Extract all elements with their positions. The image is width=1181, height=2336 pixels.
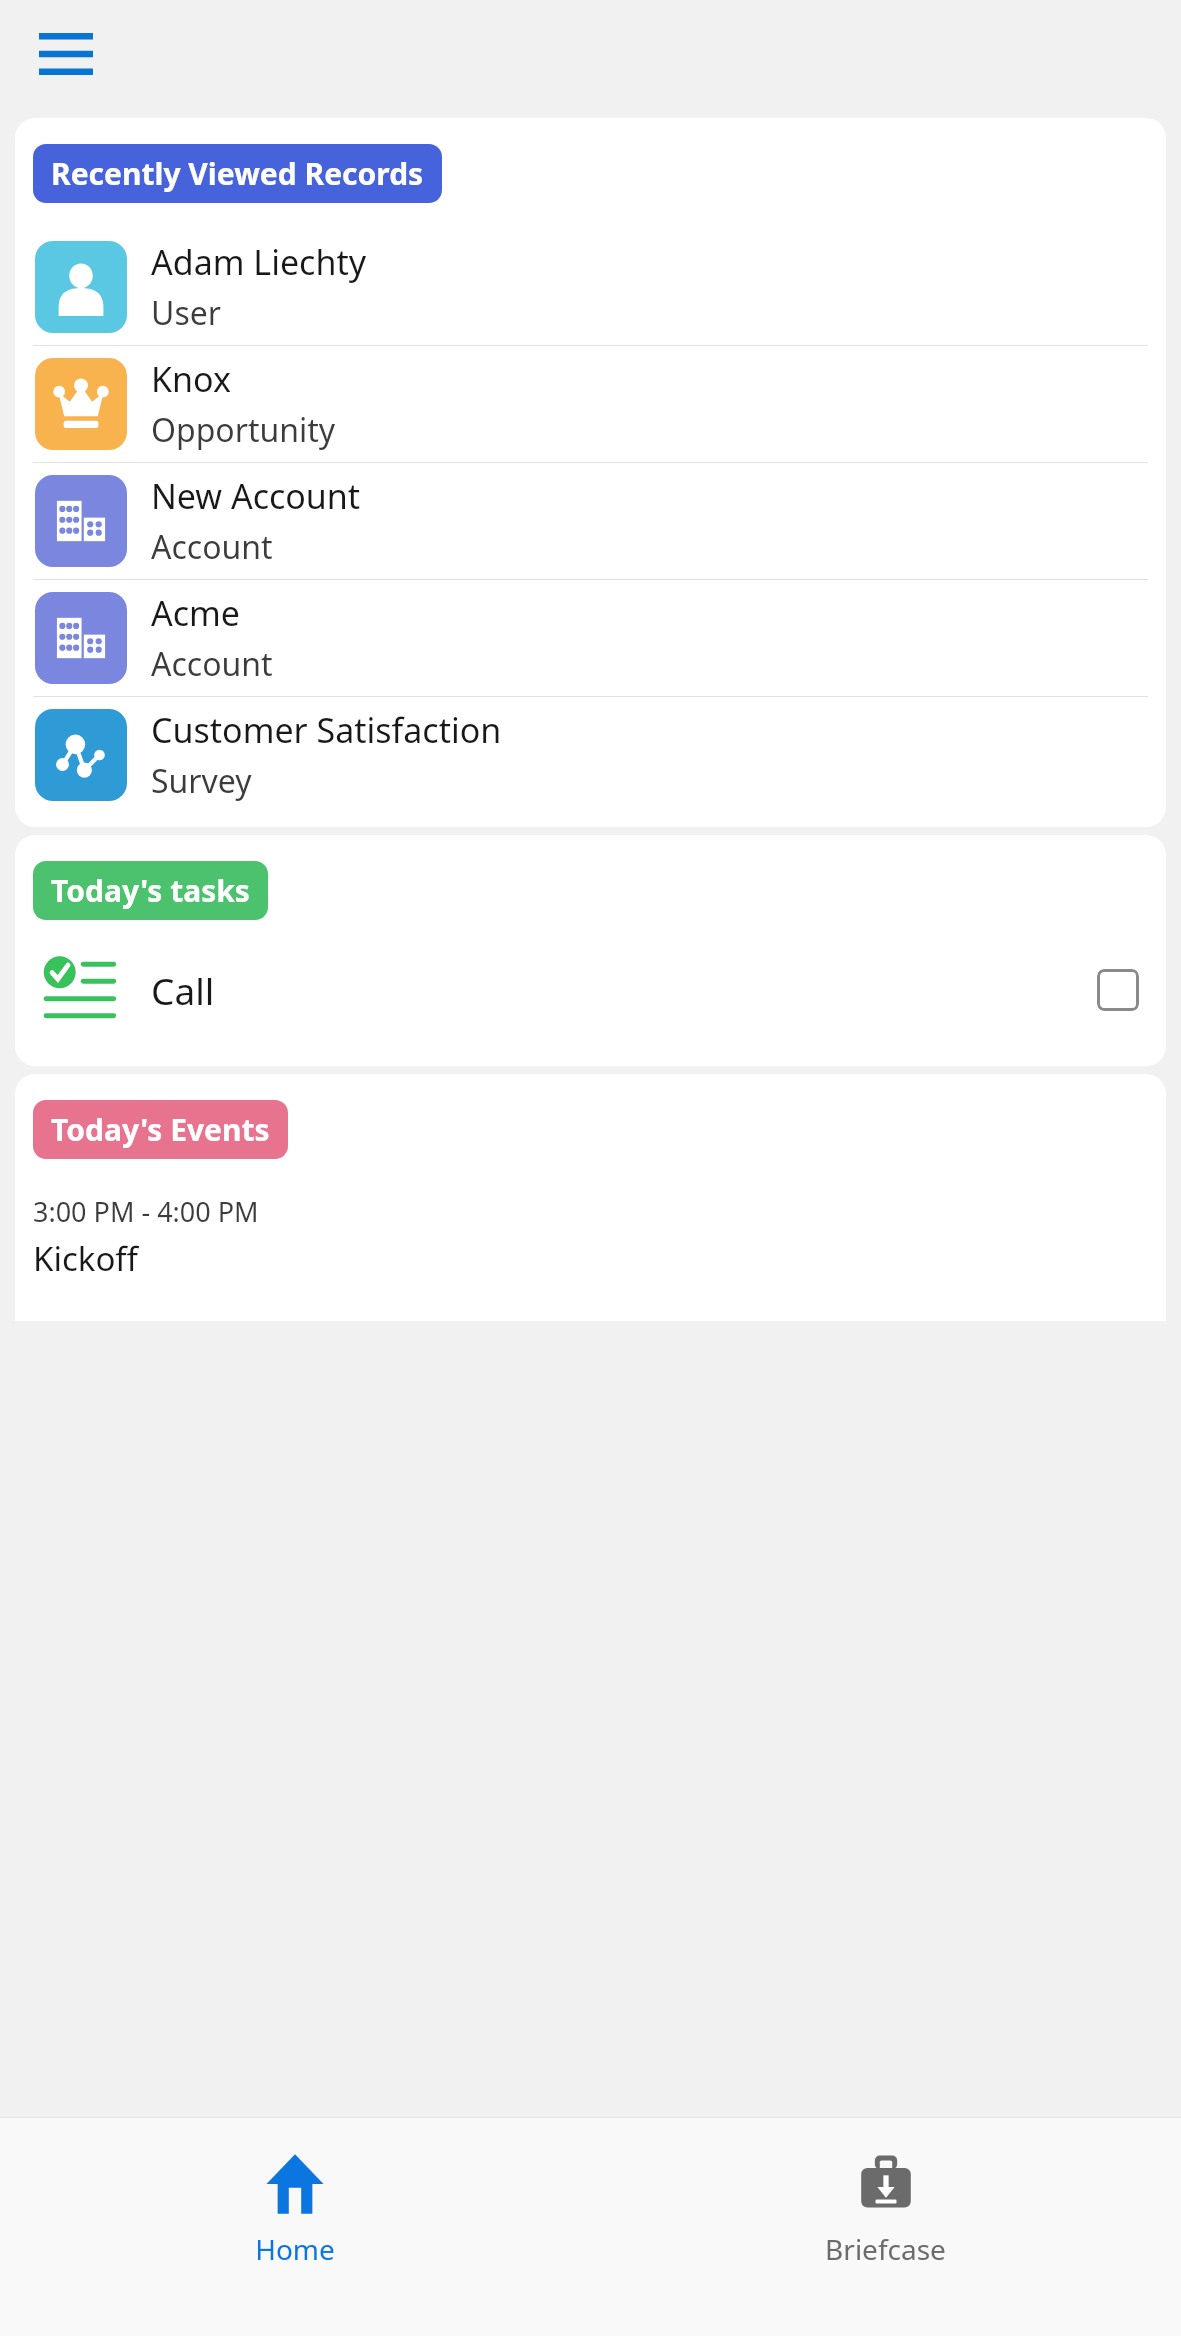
staticText: Adam Liechty xyxy=(151,239,367,285)
staticText: Home xyxy=(255,2230,335,2268)
staticText: Today's tasks xyxy=(51,870,250,911)
staticText: Call xyxy=(151,965,1088,1015)
staticText: Survey xyxy=(151,759,252,803)
staticText: Customer Satisfaction xyxy=(151,707,502,753)
button[interactable]: Today's tasks xyxy=(33,861,268,920)
staticText: Acme xyxy=(151,590,241,636)
button[interactable]: Recently Viewed Records xyxy=(33,144,442,203)
button[interactable]: 3:00 PM - 4:00 PM xyxy=(15,1193,1166,1281)
staticText: User xyxy=(151,291,221,335)
staticText: Opportunity xyxy=(151,408,336,452)
staticText: Account xyxy=(151,642,273,686)
button[interactable]: New Account xyxy=(15,463,1166,579)
staticText: Briefcase xyxy=(825,2230,946,2268)
button[interactable]: Acme xyxy=(15,580,1166,696)
button[interactable]: Briefcase xyxy=(590,2118,1181,2336)
staticText: Today's Events xyxy=(51,1109,270,1150)
staticText: New Account xyxy=(151,473,361,519)
button[interactable]: Complete task xyxy=(1088,960,1148,1020)
button[interactable]: Adam Liechty xyxy=(15,229,1166,345)
button[interactable]: Today's Events xyxy=(33,1100,288,1159)
button[interactable]: Menu xyxy=(30,22,102,86)
staticText: 3:00 PM - 4:00 PM xyxy=(33,1193,259,1230)
button[interactable]: Call xyxy=(15,950,1166,1030)
staticText: Knox xyxy=(151,356,231,402)
button[interactable]: Home xyxy=(0,2118,590,2336)
button[interactable]: Knox xyxy=(15,346,1166,462)
button[interactable]: Customer Satisfaction xyxy=(15,697,1166,813)
staticText: Account xyxy=(151,525,273,569)
staticText: Kickoff xyxy=(33,1236,139,1281)
staticText: Recently Viewed Records xyxy=(51,153,424,194)
